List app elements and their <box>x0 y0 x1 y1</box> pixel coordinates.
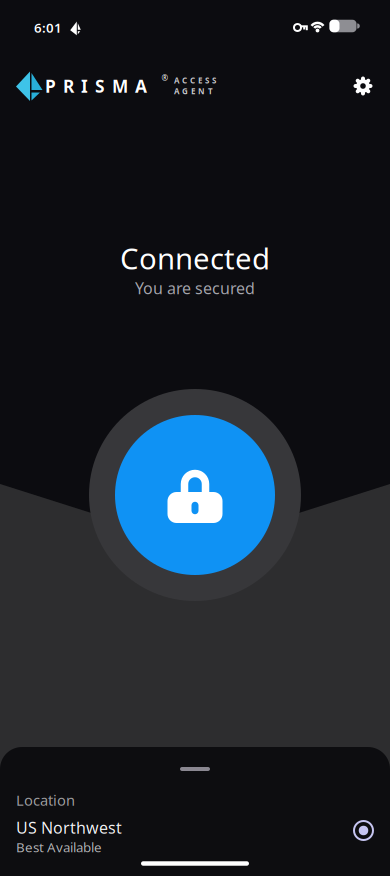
staticText: ® <box>161 73 168 83</box>
staticText: Connected <box>120 238 270 277</box>
staticText: PRISMA <box>45 74 147 97</box>
staticText: You are secured <box>135 277 255 299</box>
staticText: Best Available <box>16 838 102 856</box>
button[interactable]: Settings <box>351 74 375 98</box>
staticText: US Northwest <box>16 817 122 838</box>
staticText: AGENT <box>174 86 213 96</box>
staticText: ACCESS <box>174 75 216 86</box>
staticText: Location <box>16 790 75 810</box>
staticText: 6:01 <box>34 19 62 36</box>
button[interactable]: US Northwest <box>0 811 390 861</box>
